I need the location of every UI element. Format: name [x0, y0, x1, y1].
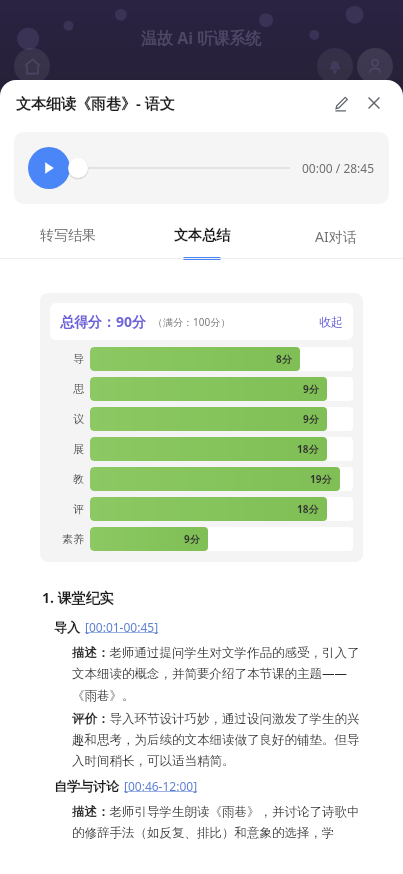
staticText: 议 — [73, 412, 84, 426]
staticText: 18分 — [297, 502, 319, 516]
staticText: 文本细读《雨巷》- 语文 — [16, 93, 175, 113]
staticText: 评 — [73, 502, 84, 516]
staticText: AI对话 — [315, 227, 357, 246]
button[interactable]: Close — [359, 88, 389, 118]
staticText: [00:46-12:00] — [124, 778, 198, 794]
button[interactable]: Notifications — [317, 48, 353, 84]
button[interactable]: Home — [14, 48, 50, 84]
button[interactable]: [00:01-00:45] — [85, 619, 159, 635]
staticText: 评价：导入环节设计巧妙，通过设问激发了学生的兴趣和思考，为后续的文本细读做了良好… — [72, 711, 367, 768]
button[interactable]: Edit — [325, 88, 355, 118]
staticText: [00:01-00:45] — [85, 619, 159, 635]
staticText: 导入 — [54, 619, 80, 635]
button[interactable]: [00:46-12:00] — [124, 778, 198, 794]
staticText: 9分 — [303, 412, 319, 426]
staticText: 导 — [73, 352, 84, 366]
staticText: 文本总结 — [174, 227, 230, 245]
button[interactable] — [70, 132, 296, 204]
button[interactable]: Profile — [357, 48, 393, 84]
staticText: 转写结果 — [40, 227, 96, 245]
staticText: 8分 — [276, 352, 292, 366]
staticText: 1. 课堂纪实 — [42, 588, 114, 607]
staticText: 自学与讨论 — [54, 778, 119, 794]
button[interactable]: AI对话 — [269, 214, 403, 258]
staticText: 00:00 / 28:45 — [302, 160, 375, 176]
staticText: 收起 — [319, 314, 343, 329]
staticText: 展 — [73, 442, 84, 456]
staticText: 9分 — [184, 532, 200, 546]
staticText: 思 — [73, 382, 84, 396]
staticText: 18分 — [297, 442, 319, 456]
staticText: 素养 — [62, 532, 84, 546]
staticText: （满分：100分） — [153, 315, 231, 329]
button[interactable]: 转写结果 — [0, 214, 135, 258]
staticText: 教 — [73, 472, 84, 486]
button[interactable]: Play — [28, 147, 70, 189]
staticText: 温故 Ai 听课系统 — [141, 27, 262, 49]
staticText: 总得分：90分 — [60, 312, 147, 331]
staticText: 19分 — [310, 472, 332, 486]
button[interactable]: 文本总结 — [135, 214, 269, 258]
button[interactable]: 总得分：90分 — [60, 312, 343, 331]
staticText: 9分 — [303, 382, 319, 396]
staticText: 描述：老师引导学生朗读《雨巷》，并讨论了诗歌中的修辞手法（如反复、排比）和意象的… — [72, 804, 367, 840]
staticText: 描述：老师通过提问学生对文学作品的感受，引入了文本细读的概念，并简要介绍了本节课… — [72, 645, 367, 703]
